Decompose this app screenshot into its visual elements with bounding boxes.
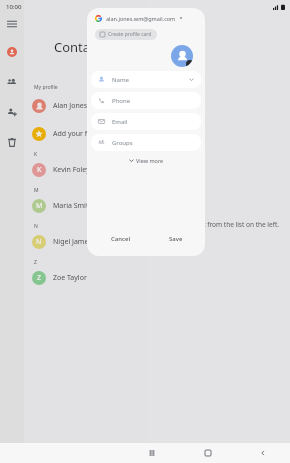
button[interactable]: Phone (91, 92, 201, 109)
staticText: Create profile card (108, 31, 152, 38)
button[interactable]: Recents (145, 446, 159, 460)
staticText: View more (136, 157, 164, 164)
button[interactable]: alan.jones.wm@gmail.com (87, 8, 205, 28)
staticText: M (34, 187, 39, 194)
button[interactable]: Email (91, 113, 201, 130)
button[interactable]: Suggestions (2, 72, 22, 92)
staticText: Nigel Jameson (53, 237, 101, 247)
button[interactable]: Save (163, 232, 189, 246)
staticText: Cancel (111, 235, 131, 243)
staticText: N (36, 237, 42, 247)
staticText: Add your favorites (53, 129, 114, 139)
staticText: Phone (112, 97, 131, 105)
staticText: Email (112, 118, 128, 126)
staticText: K (37, 165, 42, 175)
staticText: Contacts (54, 38, 108, 56)
staticText: Name (112, 76, 129, 84)
button[interactable]: Contacts (2, 42, 22, 62)
button[interactable]: Create profile card (95, 29, 157, 40)
button[interactable]: Add person (2, 102, 22, 122)
staticText: Alan Jones (53, 101, 88, 111)
button[interactable]: Cancel (105, 232, 137, 246)
button[interactable]: Z (24, 268, 148, 288)
staticText: Kevin Foley (53, 165, 90, 175)
button[interactable]: Menu (2, 14, 22, 34)
button[interactable]: N (24, 232, 148, 252)
staticText: K (34, 151, 38, 158)
staticText: Z (34, 259, 37, 266)
staticText: Select a contact from the list on the le… (158, 220, 280, 229)
staticText: Save (169, 235, 183, 243)
button[interactable]: Add your favorites (24, 124, 148, 144)
button[interactable]: Name (91, 71, 201, 88)
button[interactable]: Alan Jones (24, 96, 148, 116)
button[interactable]: Trash (2, 132, 22, 152)
staticText: Zoe Taylor (53, 273, 87, 283)
staticText: M (36, 201, 43, 211)
staticText: Groups (112, 139, 133, 147)
staticText: alan.jones.wm@gmail.com (106, 15, 176, 22)
staticText: N (34, 223, 38, 230)
staticText: Maria Smith (53, 201, 93, 211)
button[interactable]: M (24, 196, 148, 216)
button[interactable]: View more (87, 154, 205, 166)
button[interactable]: K (24, 160, 148, 180)
button[interactable]: Back (256, 446, 270, 460)
button[interactable]: Home (201, 446, 215, 460)
staticText: 10:00 (6, 3, 22, 11)
staticText: Z (37, 273, 42, 283)
button[interactable]: Groups (91, 134, 201, 151)
button[interactable]: Change photo (171, 45, 193, 67)
staticText: My profile (34, 84, 58, 91)
